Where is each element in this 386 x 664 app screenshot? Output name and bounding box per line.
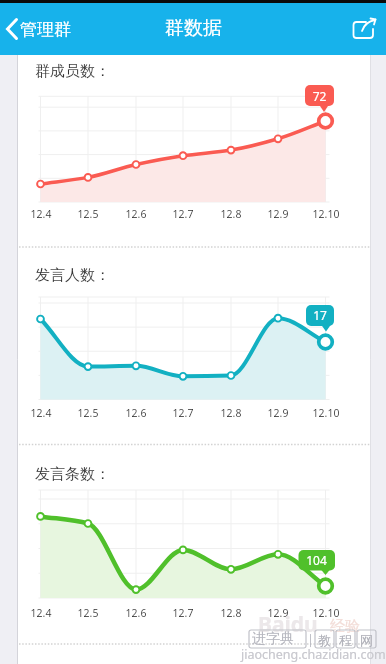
staticText: 12.7	[169, 606, 197, 620]
staticText: 12.4	[27, 207, 55, 221]
staticText: 管理群	[20, 19, 71, 40]
staticText: 程	[339, 632, 352, 648]
staticText: 网	[360, 632, 373, 648]
staticText: ｜	[304, 631, 317, 647]
staticText: 12.9	[264, 207, 292, 221]
staticText: 12.9	[264, 606, 292, 620]
staticText: 12.5	[74, 207, 102, 221]
staticText: 12.9	[264, 406, 292, 420]
staticText: 12.5	[74, 606, 102, 620]
staticText: 12.6	[122, 606, 150, 620]
staticText: 教	[318, 632, 331, 648]
staticText: 104	[298, 552, 335, 568]
staticText: 17	[306, 307, 334, 323]
staticText: 12.10	[312, 207, 340, 221]
staticText: 经验	[330, 617, 360, 636]
staticText: jiaocheng.chazidian.com	[241, 646, 386, 663]
staticText: 12.10	[312, 606, 340, 620]
staticText: 12.5	[74, 406, 102, 420]
staticText: 12.8	[217, 606, 245, 620]
button[interactable]	[352, 17, 378, 41]
staticText: 72	[305, 88, 334, 104]
staticText: 12.6	[122, 406, 150, 420]
staticText: 12.6	[122, 207, 150, 221]
staticText: Baidu	[258, 610, 318, 639]
staticText: 12.7	[169, 207, 197, 221]
staticText: 群成员数：	[35, 62, 110, 81]
staticText: 群数据	[165, 16, 222, 40]
staticText: 12.8	[217, 406, 245, 420]
staticText: 12.4	[27, 406, 55, 420]
staticText: 进字典	[252, 630, 294, 648]
staticText: 12.7	[169, 406, 197, 420]
staticText: 12.4	[27, 606, 55, 620]
staticText: 发言条数：	[35, 465, 110, 484]
button[interactable]: 管理群	[4, 18, 71, 40]
staticText: 发言人数：	[35, 266, 110, 285]
staticText: 12.8	[217, 207, 245, 221]
staticText: 12.10	[312, 406, 340, 420]
